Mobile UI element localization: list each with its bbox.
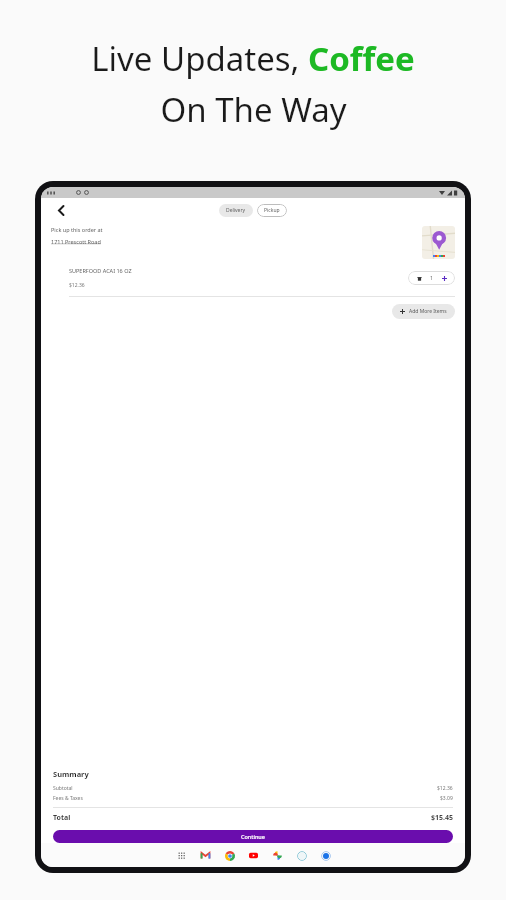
button[interactable]: Gmail (199, 849, 212, 862)
button[interactable]: 1711 Prescott Road (51, 238, 101, 245)
button[interactable]: Add one (440, 274, 448, 282)
staticText: Delivery (226, 207, 246, 214)
staticText: Total (53, 813, 71, 823)
button[interactable]: Continue (53, 830, 453, 843)
staticText: $15.45 (431, 813, 453, 823)
staticText: $12.36 (437, 785, 453, 792)
staticText: Pickup (264, 207, 280, 214)
button[interactable]: Map (422, 226, 455, 259)
staticText: 1 (430, 275, 433, 282)
button[interactable]: Add More Items (392, 304, 455, 319)
button[interactable]: Photos (271, 849, 284, 862)
button[interactable]: Remove item (415, 274, 423, 282)
button[interactable]: Pickup (257, 204, 287, 217)
button[interactable]: Delivery (219, 204, 253, 217)
staticText: Subtotal (53, 785, 73, 792)
button[interactable]: Messages (319, 849, 332, 862)
staticText: Summary (53, 769, 89, 779)
button[interactable]: Assistant (295, 849, 308, 862)
button[interactable]: Chrome (223, 849, 236, 862)
staticText: $12.36 (69, 282, 85, 289)
staticText: Add More Items (409, 308, 447, 315)
button[interactable]: Back (51, 200, 71, 220)
staticText: On The Way (160, 87, 347, 132)
staticText: Pick up this order at (51, 226, 103, 233)
button[interactable]: All apps (175, 849, 188, 862)
staticText: Live Updates, Coffee (91, 36, 415, 81)
button[interactable]: YouTube (247, 849, 260, 862)
staticText: Continue (241, 833, 265, 840)
staticText: Fees & Taxes (53, 795, 83, 802)
staticText: SUPERFOOD ACAI 16 OZ (69, 267, 132, 274)
staticText: $3.09 (440, 795, 453, 802)
